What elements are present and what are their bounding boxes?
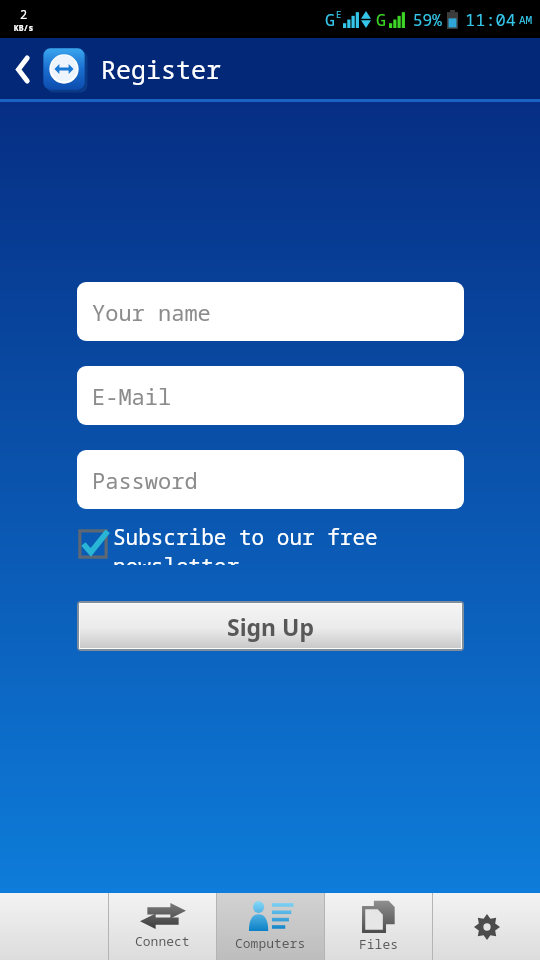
staticText: Computers bbox=[235, 934, 306, 952]
staticText: Password bbox=[92, 465, 198, 495]
staticText: E-Mail bbox=[92, 381, 172, 411]
button[interactable]: Computers bbox=[217, 893, 324, 960]
staticText: AM bbox=[519, 12, 533, 27]
button[interactable]: Connect bbox=[109, 893, 216, 960]
button[interactable]: Sign Up bbox=[80, 604, 461, 648]
staticText: Register bbox=[101, 52, 222, 86]
button[interactable]: Files bbox=[325, 893, 432, 960]
staticText: Your name bbox=[92, 297, 211, 327]
staticText: 59% bbox=[413, 9, 442, 31]
button[interactable]: Your name bbox=[77, 282, 464, 341]
button[interactable]: Password bbox=[77, 450, 464, 509]
button[interactable]: Subscribe to our free newsletter bbox=[77, 523, 464, 565]
staticText: G bbox=[325, 8, 336, 31]
staticText: 11:04 bbox=[465, 8, 516, 31]
button[interactable]: Settings bbox=[433, 893, 540, 960]
staticText: Subscribe to our free newsletter bbox=[113, 523, 464, 565]
staticText: KB/s bbox=[14, 22, 34, 33]
staticText: Sign Up bbox=[227, 611, 314, 642]
staticText: E bbox=[336, 8, 342, 20]
staticText: G bbox=[376, 8, 387, 31]
button[interactable]: More bbox=[0, 893, 108, 960]
button[interactable]: TeamViewer bbox=[40, 45, 88, 93]
staticText: Files bbox=[359, 935, 399, 953]
button[interactable]: Back bbox=[8, 45, 38, 93]
staticText: 2 bbox=[20, 6, 28, 22]
staticText: Connect bbox=[135, 932, 190, 950]
button[interactable]: E-Mail bbox=[77, 366, 464, 425]
